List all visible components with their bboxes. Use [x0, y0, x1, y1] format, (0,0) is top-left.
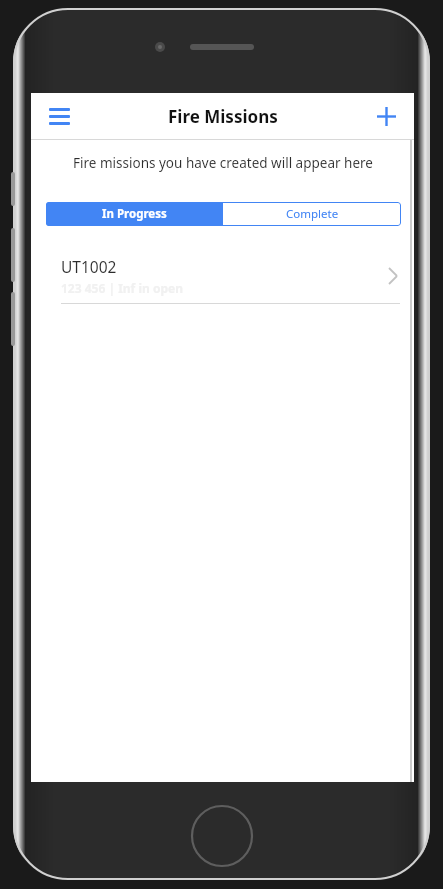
button[interactable]: UT1002 — [31, 248, 414, 303]
button[interactable]: Complete — [223, 202, 401, 226]
button[interactable]: In Progress — [46, 202, 223, 226]
staticText: Complete — [286, 206, 339, 222]
staticText: UT1002 — [61, 256, 117, 277]
staticText: In Progress — [102, 206, 167, 222]
button[interactable]: Add fire mission — [366, 96, 406, 136]
button[interactable]: Menu — [39, 96, 79, 136]
staticText: Fire missions you have created will appe… — [73, 154, 373, 172]
staticText: 123 456 | Inf in open — [61, 280, 183, 296]
staticText: Fire Missions — [168, 105, 278, 128]
